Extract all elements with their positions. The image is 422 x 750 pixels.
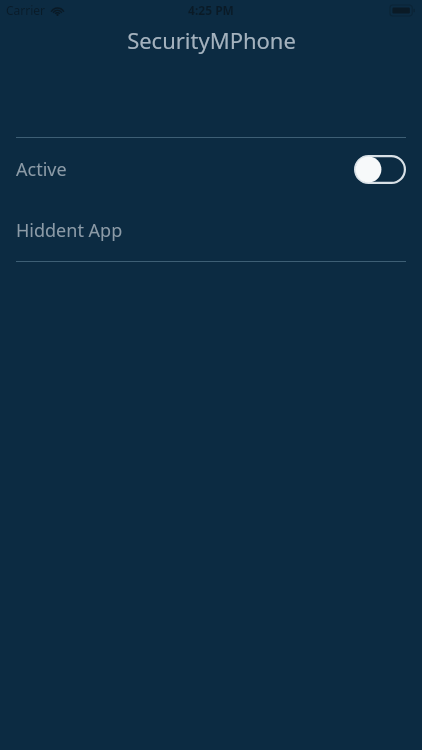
staticText: Hiddent App [16, 218, 123, 243]
other: Active off [354, 155, 406, 184]
button[interactable]: Active [0, 138, 422, 200]
staticText: Active [16, 157, 67, 182]
staticText: Carrier [6, 2, 46, 18]
button[interactable]: Hiddent App [0, 200, 422, 261]
staticText: SecurityMPhone [127, 25, 296, 55]
staticText: 4:25 PM [188, 2, 234, 18]
